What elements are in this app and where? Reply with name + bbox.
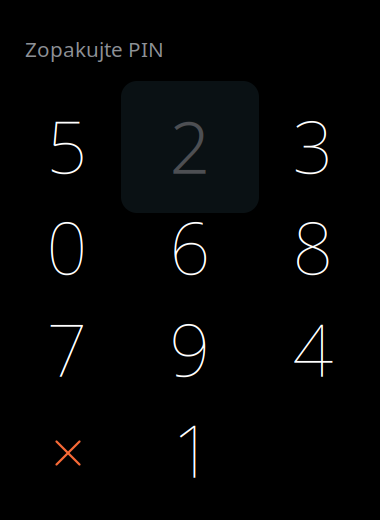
staticText: 5 bbox=[46, 97, 87, 195]
staticText: 8 bbox=[292, 198, 333, 296]
button[interactable]: 0 bbox=[5, 197, 128, 298]
button[interactable]: 5 bbox=[5, 96, 128, 197]
button[interactable]: 4 bbox=[251, 299, 374, 400]
button[interactable]: 2 bbox=[128, 96, 251, 197]
staticText: 1 bbox=[172, 401, 213, 499]
staticText: 0 bbox=[46, 198, 87, 296]
staticText: 2 bbox=[169, 97, 210, 195]
button[interactable]: 7 bbox=[5, 299, 128, 400]
staticText: 4 bbox=[292, 300, 333, 398]
staticText: 7 bbox=[46, 300, 87, 398]
staticText: Zopakujte PIN bbox=[25, 35, 164, 63]
button[interactable]: 3 bbox=[251, 96, 374, 197]
staticText: 9 bbox=[169, 300, 210, 398]
button[interactable]: 6 bbox=[128, 197, 251, 298]
button[interactable]: 8 bbox=[251, 197, 374, 298]
button[interactable]: 1 bbox=[128, 400, 251, 501]
button[interactable]: 9 bbox=[128, 299, 251, 400]
staticText: 3 bbox=[292, 97, 333, 195]
button[interactable]: Delete bbox=[5, 400, 128, 501]
staticText: 6 bbox=[169, 198, 210, 296]
